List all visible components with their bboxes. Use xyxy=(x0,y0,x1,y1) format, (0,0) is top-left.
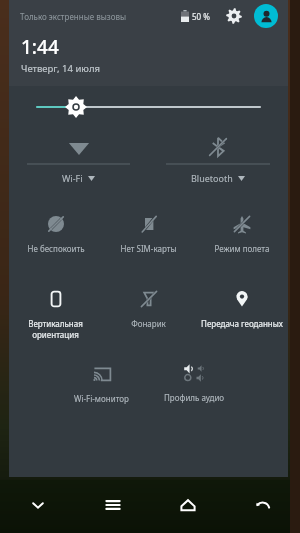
button[interactable]: Wi-Fi-монитор xyxy=(55,358,148,424)
staticText: Вертикальная ориентация xyxy=(28,318,83,340)
staticText: Не беспокоить xyxy=(27,243,85,254)
button[interactable]: Вертикальная ориентация xyxy=(9,283,102,349)
staticText: Фонарик xyxy=(131,318,166,329)
button[interactable]: Back xyxy=(225,477,300,533)
staticText: Wi-Fi-монитор xyxy=(74,393,129,404)
button[interactable]: Фонарик xyxy=(102,283,195,349)
staticText: Четверг, 14 июля xyxy=(21,62,101,75)
button[interactable]: Нет SIM-карты xyxy=(102,208,195,274)
button[interactable]: Settings xyxy=(222,4,246,28)
button[interactable]: Передача геоданных xyxy=(195,283,288,349)
staticText: Режим полета xyxy=(214,243,270,254)
staticText: Только экстренные вызовы xyxy=(20,11,127,22)
button[interactable]: Brightness xyxy=(9,86,288,128)
staticText: Профиль аудио xyxy=(164,392,225,403)
button[interactable]: Collapse xyxy=(0,477,75,533)
staticText: Wi-Fi xyxy=(62,172,83,184)
button[interactable]: User profile xyxy=(254,4,278,28)
staticText: 1:44 xyxy=(21,34,59,60)
staticText: Нет SIM-карты xyxy=(120,243,177,254)
button[interactable]: Не беспокоить xyxy=(9,208,102,274)
button[interactable]: Wi-Fi xyxy=(9,132,148,194)
button[interactable]: Bluetooth xyxy=(148,132,288,194)
staticText: Bluetooth xyxy=(191,172,233,184)
button[interactable]: Режим полета xyxy=(195,208,288,274)
button[interactable]: Профиль аудио xyxy=(148,358,241,424)
staticText: 50 % xyxy=(192,11,210,22)
button[interactable]: Home xyxy=(150,477,225,533)
staticText: Передача геоданных xyxy=(201,318,283,329)
button[interactable]: Recent apps xyxy=(75,477,150,533)
